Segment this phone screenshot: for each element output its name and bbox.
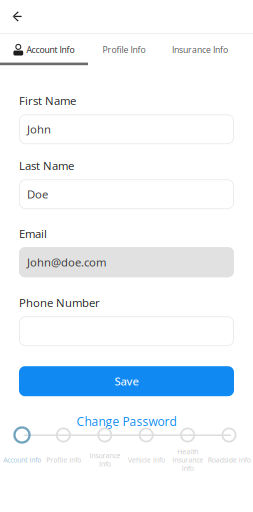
button[interactable]: Doe [19,179,234,209]
staticText: Email [19,226,47,241]
staticText: Health Insurance Info [172,447,203,473]
staticText: Save [114,373,138,389]
staticText: Insurance Info [172,44,228,56]
button[interactable]: John [19,114,234,144]
staticText: Account Info [3,455,41,464]
button[interactable]: Change Password [76,415,176,428]
button[interactable]: Save [19,366,234,396]
button[interactable]: Profile Info [88,34,160,65]
staticText: John@doe.com [27,254,106,270]
staticText: Vehicle Info [128,455,165,464]
button[interactable]: Account Info [0,34,88,65]
staticText: Profile Info [46,455,81,464]
staticText: First Name [19,93,76,108]
button[interactable]: Insurance Info [84,426,125,476]
button[interactable]: Health Insurance Info [167,426,208,476]
button[interactable]: Roadside Info [208,426,250,476]
staticText: Phone Number [19,295,100,310]
staticText: Doe [27,186,48,202]
staticText: Insurance Info [89,451,120,469]
staticText: Change Password [76,413,176,429]
staticText: Last Name [19,158,74,173]
staticText: Account Info [27,44,75,56]
button[interactable]: Profile Info [43,426,84,476]
button[interactable]: John@doe.com [19,247,234,277]
button[interactable]: Vehicle Info [125,426,167,476]
button[interactable]: Insurance Info [160,34,240,65]
button[interactable]: Back [5,4,29,28]
staticText: Roadside Info [207,455,250,464]
button[interactable] [19,316,234,346]
button[interactable]: Account Info [1,426,43,476]
staticText: John [27,121,51,137]
staticText: Profile Info [102,44,145,56]
